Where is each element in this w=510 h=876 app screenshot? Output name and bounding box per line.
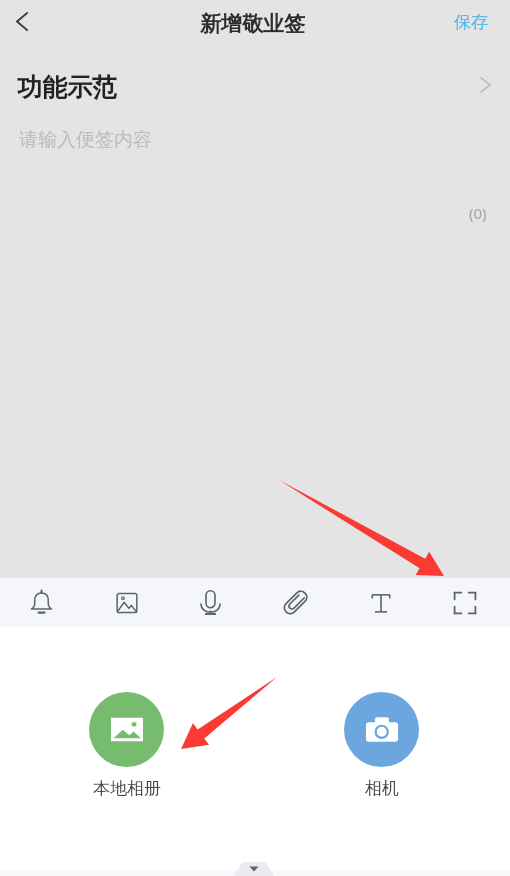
button[interactable]: Attachment <box>255 578 340 627</box>
button[interactable]: Voice <box>170 578 255 627</box>
staticText: 新增敬业签 <box>200 11 305 37</box>
button[interactable]: 功能示范 <box>0 56 510 113</box>
staticText: 请输入便签内容 <box>19 128 152 152</box>
staticText: 功能示范 <box>17 72 117 103</box>
button[interactable]: Back <box>0 0 44 41</box>
button[interactable]: 保存 <box>454 12 488 33</box>
staticText: 本地相册 <box>93 778 161 799</box>
button[interactable]: 相机 <box>344 692 419 799</box>
staticText: 保存 <box>454 12 488 33</box>
button[interactable]: 本地相册 <box>89 692 164 799</box>
button[interactable]: Image <box>85 578 170 627</box>
staticText: (0) <box>469 203 487 223</box>
button[interactable]: Collapse <box>234 862 274 876</box>
button[interactable]: Fullscreen <box>425 578 510 627</box>
button[interactable]: Text format <box>340 578 425 627</box>
button[interactable]: Reminder <box>0 578 85 627</box>
staticText: 相机 <box>365 778 399 799</box>
